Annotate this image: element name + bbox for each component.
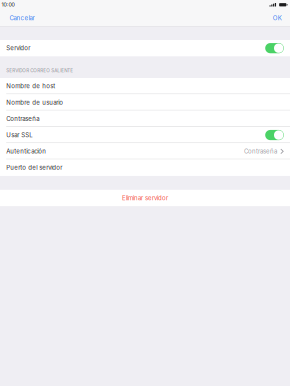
button[interactable]: Cancelar (0, 9, 44, 25)
button[interactable]: Nombre de usuario (0, 94, 290, 111)
button[interactable]: Servidor (0, 40, 290, 56)
button[interactable]: Puerto del servidor (0, 159, 290, 176)
staticText: Nombre de host (6, 82, 55, 90)
staticText: SERVIDOR CORREO SALIENTE (6, 68, 73, 73)
button[interactable]: Eliminar servidor (0, 190, 290, 206)
button[interactable]: Activado (265, 43, 284, 53)
staticText: Autenticación (6, 148, 46, 155)
staticText: Contraseña (244, 148, 277, 155)
button[interactable]: Contraseña (0, 111, 290, 127)
staticText: Nombre de usuario (6, 99, 63, 106)
staticText: Contraseña (6, 115, 39, 122)
button[interactable]: Activado (265, 130, 284, 140)
button[interactable]: Nombre de host (0, 78, 290, 94)
button[interactable]: OK (265, 9, 290, 25)
staticText: 10:00 (2, 1, 15, 8)
staticText: Cancelar (9, 14, 34, 22)
button[interactable]: Usar SSL (0, 127, 290, 143)
staticText: OK (273, 14, 282, 22)
staticText: Usar SSL (6, 131, 32, 139)
button[interactable]: Autenticación (0, 143, 290, 159)
staticText: Puerto del servidor (6, 164, 62, 171)
staticText: Servidor (6, 44, 30, 52)
staticText: Eliminar servidor (122, 194, 168, 202)
